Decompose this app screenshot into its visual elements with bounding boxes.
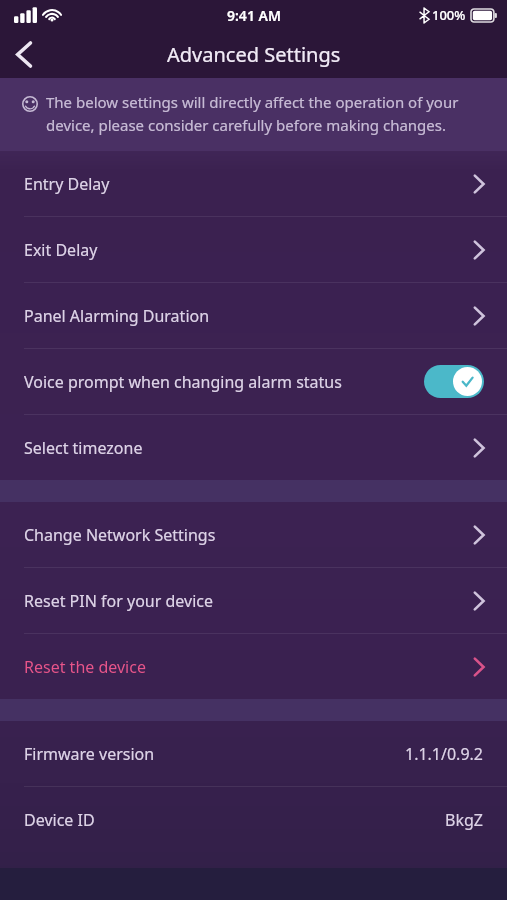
staticText: Reset PIN for your device — [24, 590, 473, 612]
button[interactable]: Reset the device — [0, 634, 507, 699]
staticText: 9:41 AM — [227, 6, 281, 25]
staticText: BkgZ — [445, 809, 483, 831]
staticText: Firmware version — [24, 743, 404, 765]
staticText: Change Network Settings — [24, 524, 473, 546]
button[interactable]: Panel Alarming Duration — [0, 283, 507, 348]
staticText: Device ID — [24, 809, 445, 831]
staticText: The below settings will directly affect … — [46, 92, 489, 135]
button[interactable]: Reset PIN for your device — [0, 568, 507, 633]
button[interactable]: Device ID — [0, 787, 507, 852]
staticText: Select timezone — [24, 437, 473, 459]
staticText: Exit Delay — [24, 239, 473, 261]
staticText: 1.1.1/0.9.2 — [404, 743, 483, 765]
button[interactable]: Entry Delay — [0, 151, 507, 216]
button[interactable]: Firmware version — [0, 721, 507, 786]
staticText: Entry Delay — [24, 173, 473, 195]
button[interactable]: Voice prompt when changing alarm status — [0, 349, 507, 414]
button[interactable]: Select timezone — [0, 415, 507, 480]
staticText: 100% — [432, 6, 466, 24]
staticText: Voice prompt when changing alarm status — [24, 371, 424, 393]
button[interactable]: Voice prompt toggle — [424, 365, 484, 398]
staticText: Reset the device — [24, 656, 473, 678]
button[interactable]: Change Network Settings — [0, 502, 507, 567]
staticText: Panel Alarming Duration — [24, 305, 473, 327]
button[interactable]: Exit Delay — [0, 217, 507, 282]
button[interactable]: Back — [0, 30, 48, 78]
staticText: Advanced Settings — [167, 41, 341, 68]
